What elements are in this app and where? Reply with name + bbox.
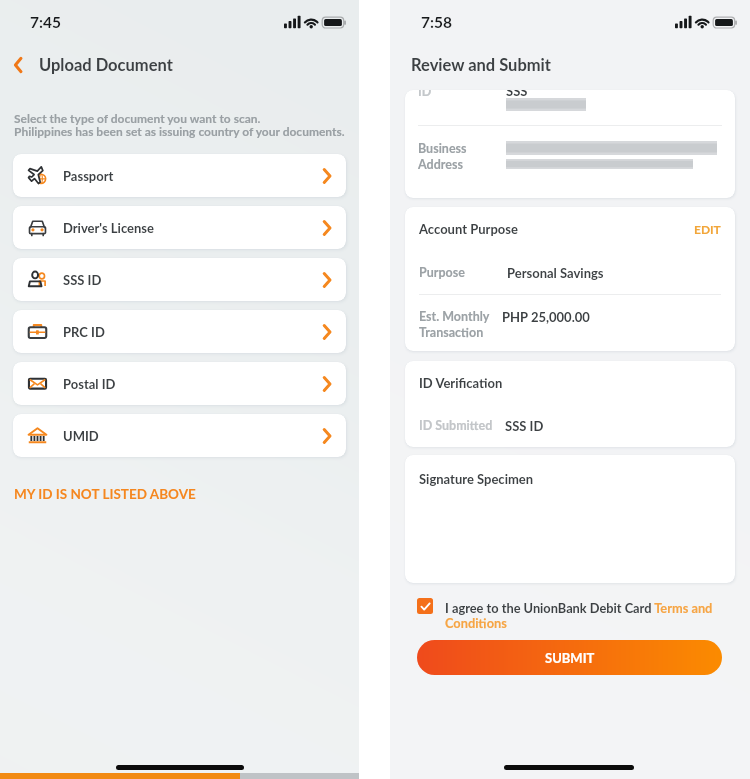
- staticText: EDIT: [694, 222, 721, 236]
- staticText: I agree to the UnionBank Debit Card Term…: [445, 600, 732, 631]
- staticText: 7:45: [30, 13, 61, 32]
- button[interactable]: SSS ID: [13, 258, 346, 301]
- button[interactable]: Agree to terms: [417, 598, 433, 614]
- staticText: Review and Submit: [411, 55, 551, 75]
- staticText: Upload Document: [39, 55, 173, 75]
- staticText: Signature Specimen: [419, 471, 534, 487]
- staticText: 7:58: [421, 13, 452, 32]
- staticText: SUBMIT: [545, 650, 595, 666]
- staticText: SSS ID: [63, 272, 102, 288]
- staticText: Account Purpose: [419, 221, 518, 237]
- staticText: Personal Savings: [507, 265, 604, 281]
- button[interactable]: EDIT: [694, 222, 721, 236]
- button[interactable]: UMID: [13, 414, 346, 457]
- staticText: Business Address: [418, 141, 467, 171]
- staticText: Passport: [63, 168, 114, 184]
- button[interactable]: SUBMIT: [417, 640, 722, 675]
- staticText: Purpose: [419, 265, 465, 280]
- staticText: ID Submitted: [419, 418, 493, 433]
- button[interactable]: Passport: [13, 154, 346, 197]
- button[interactable]: Driver's License: [13, 206, 346, 249]
- button[interactable]: Back: [5, 52, 31, 78]
- staticText: SSS: [506, 90, 528, 99]
- staticText: MY ID IS NOT LISTED ABOVE: [14, 486, 196, 502]
- staticText: Select the type of document you want to …: [14, 111, 345, 139]
- staticText: SSS ID: [505, 418, 544, 434]
- button[interactable]: MY ID IS NOT LISTED ABOVE: [14, 486, 196, 502]
- staticText: PHP 25,000.00: [502, 309, 590, 325]
- staticText: PRC ID: [63, 324, 105, 340]
- staticText: ID Verification: [419, 375, 503, 391]
- staticText: Driver's License: [63, 220, 154, 236]
- staticText: Est. Monthly Transaction: [419, 309, 490, 339]
- button[interactable]: PRC ID: [13, 310, 346, 353]
- button[interactable]: Postal ID: [13, 362, 346, 405]
- staticText: Postal ID: [63, 376, 116, 392]
- staticText: UMID: [63, 428, 99, 444]
- staticText: ID: [418, 90, 432, 99]
